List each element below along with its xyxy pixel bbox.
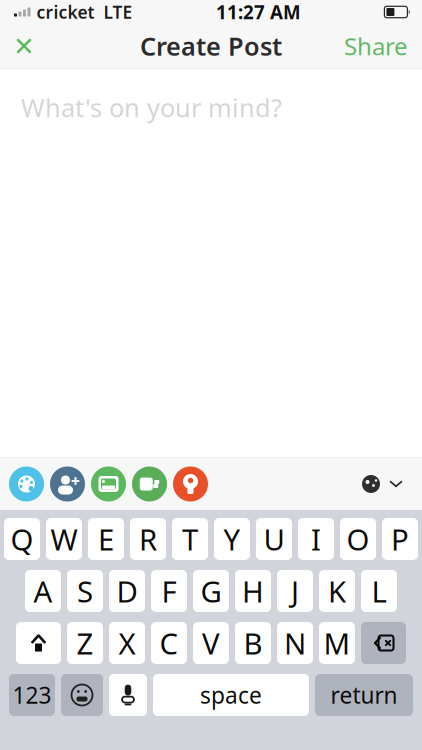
staticText: C [159, 623, 178, 662]
staticText: F [161, 571, 176, 610]
button[interactable]: C [151, 622, 187, 664]
staticText: J [291, 571, 299, 610]
button[interactable]: O [340, 518, 376, 560]
button[interactable]: Delete [361, 622, 406, 664]
button[interactable]: W [46, 518, 82, 560]
staticText: Z [76, 623, 93, 662]
button[interactable]: R [130, 518, 166, 560]
staticText: W [50, 519, 77, 558]
staticText: P [391, 519, 409, 558]
button[interactable]: H [235, 570, 271, 612]
button[interactable]: S [67, 570, 103, 612]
staticText: G [200, 571, 221, 610]
staticText: X [118, 623, 135, 662]
button[interactable]: Emoji [61, 674, 103, 716]
staticText: E [98, 519, 114, 558]
button[interactable]: What's on your mind? [0, 69, 422, 457]
staticText: L [371, 571, 386, 610]
button[interactable]: N [277, 622, 313, 664]
staticText: 123 [12, 680, 51, 710]
staticText: O [346, 519, 369, 558]
staticText: T [182, 519, 198, 558]
button[interactable]: Dictation [109, 674, 147, 716]
button[interactable]: I [298, 518, 334, 560]
button[interactable]: Shift [16, 622, 61, 664]
staticText: return [330, 680, 397, 710]
staticText: 11:27 AM [216, 0, 301, 24]
staticText: Y [223, 519, 240, 558]
button[interactable]: Audience: Public [350, 462, 416, 506]
staticText: Q [10, 519, 33, 558]
button[interactable]: J [277, 570, 313, 612]
button[interactable]: E [88, 518, 124, 560]
staticText: S [77, 571, 93, 610]
staticText: I [311, 519, 321, 558]
staticText: N [284, 623, 306, 662]
button[interactable]: V [193, 622, 229, 664]
button[interactable]: K [319, 570, 355, 612]
button[interactable]: space [153, 674, 309, 716]
button[interactable]: T [172, 518, 208, 560]
button[interactable]: Add location [170, 462, 211, 506]
button[interactable]: Tag people [47, 462, 88, 506]
button[interactable]: Z [67, 622, 103, 664]
button[interactable]: Q [4, 518, 40, 560]
button[interactable]: B [235, 622, 271, 664]
staticText: R [139, 519, 157, 558]
button[interactable]: L [361, 570, 397, 612]
staticText: LTE [103, 0, 132, 23]
staticText: Share [344, 30, 408, 62]
staticText: What's on your mind? [21, 91, 282, 124]
button[interactable]: U [256, 518, 292, 560]
staticText: B [243, 623, 262, 662]
staticText: K [328, 571, 346, 610]
button[interactable]: F [151, 570, 187, 612]
staticText: M [323, 623, 350, 662]
button[interactable]: Feeling [6, 462, 47, 506]
button[interactable]: 123 [9, 674, 55, 716]
staticText: U [263, 519, 284, 558]
staticText: H [242, 571, 264, 610]
button[interactable]: Y [214, 518, 250, 560]
staticText: A [33, 571, 52, 610]
staticText: cricket [36, 0, 94, 23]
button[interactable]: D [109, 570, 145, 612]
staticText: D [116, 571, 137, 610]
staticText: V [202, 623, 220, 662]
button[interactable]: return [315, 674, 413, 716]
button[interactable]: Add video [129, 462, 170, 506]
button[interactable]: P [382, 518, 418, 560]
button[interactable]: A [25, 570, 61, 612]
button[interactable]: Close [0, 24, 48, 68]
button[interactable]: Share [330, 24, 422, 68]
button[interactable]: X [109, 622, 145, 664]
button[interactable]: Add photo [88, 462, 129, 506]
button[interactable]: M [319, 622, 355, 664]
button[interactable]: G [193, 570, 229, 612]
staticText: Create Post [140, 29, 282, 63]
staticText: space [200, 680, 262, 710]
